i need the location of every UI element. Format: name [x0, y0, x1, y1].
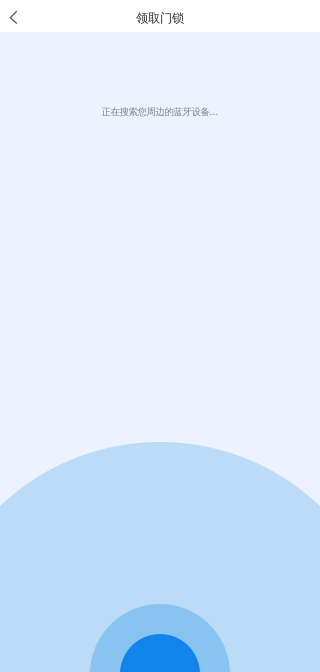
staticText: 领取门锁	[136, 10, 184, 26]
button[interactable]: Back	[0, 0, 40, 32]
staticText: 正在搜索您周边的蓝牙设备...	[101, 105, 218, 118]
